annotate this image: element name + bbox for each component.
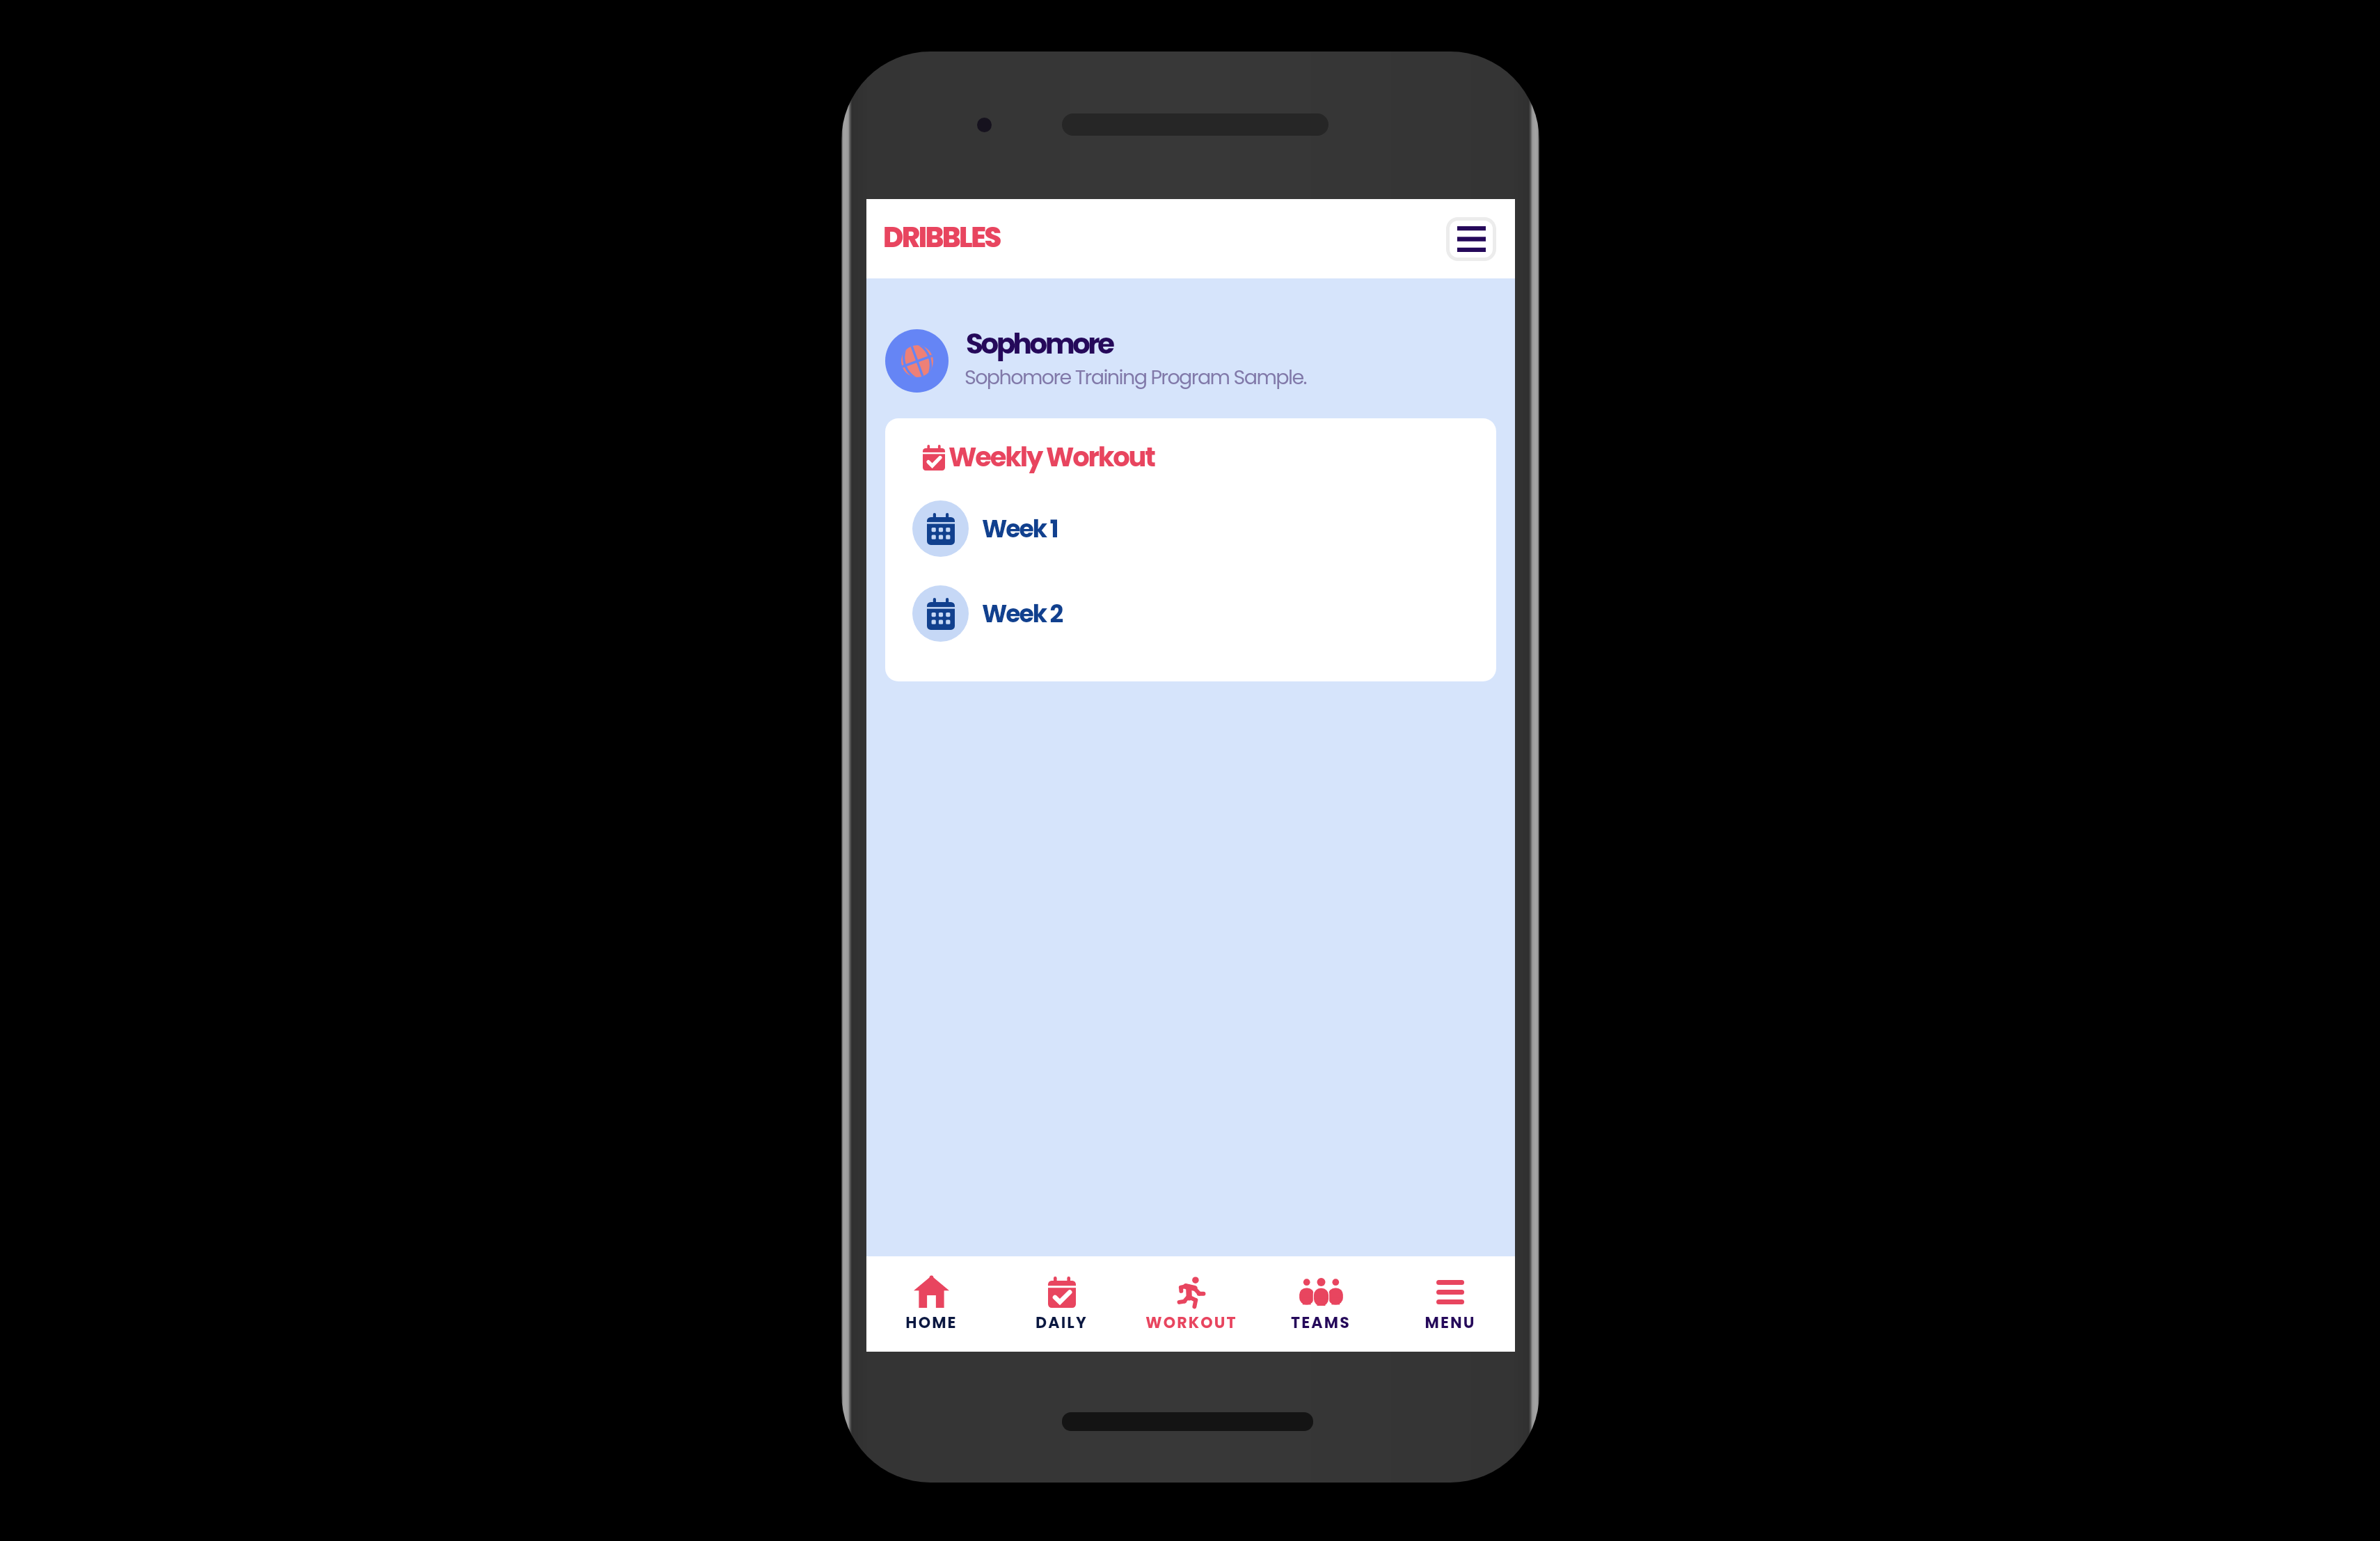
button[interactable]: HOME: [866, 1256, 997, 1352]
staticText: Sophomore: [966, 324, 1113, 363]
staticText: DRIBBLES: [883, 218, 1000, 257]
button[interactable]: WORKOUT: [1127, 1256, 1256, 1352]
staticText: DAILY: [1036, 1312, 1088, 1334]
button[interactable]: Week 2: [885, 585, 1496, 642]
button[interactable]: Open menu: [1450, 221, 1493, 258]
staticText: Week 1: [982, 512, 1058, 546]
staticText: MENU: [1425, 1312, 1476, 1334]
staticText: WORKOUT: [1145, 1312, 1237, 1334]
button[interactable]: MENU: [1386, 1256, 1515, 1352]
button[interactable]: Week 1: [885, 500, 1496, 557]
button[interactable]: DAILY: [997, 1256, 1127, 1352]
button[interactable]: TEAMS: [1256, 1256, 1386, 1352]
staticText: TEAMS: [1291, 1312, 1351, 1334]
staticText: Weekly Workout: [949, 438, 1155, 476]
staticText: Week 2: [982, 597, 1063, 631]
staticText: HOME: [905, 1312, 958, 1334]
staticText: Sophomore Training Program Sample.: [965, 363, 1306, 391]
